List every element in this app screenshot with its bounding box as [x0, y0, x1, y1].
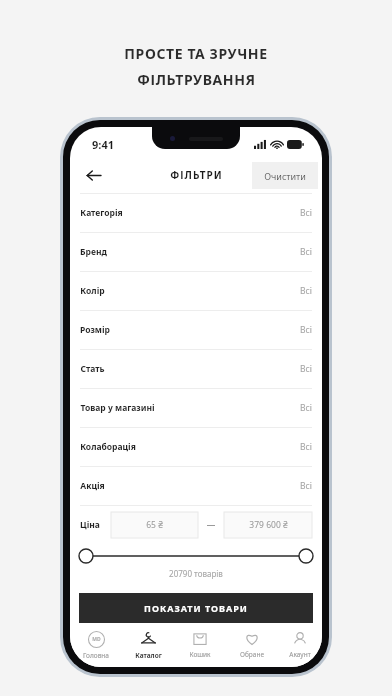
staticText: Товар у магазині [80, 402, 155, 414]
staticText: Колаборація [80, 441, 136, 453]
staticText: Ціна [80, 519, 100, 531]
staticText: Всі [300, 207, 312, 219]
staticText: 379 600 ₴ [249, 519, 288, 531]
button[interactable]: Стать [70, 350, 322, 388]
button[interactable]: 65 ₴ [111, 512, 198, 538]
staticText: Очистити [264, 170, 306, 182]
staticText: Головна [83, 651, 109, 660]
button[interactable]: ПОКАЗАТИ ТОВАРИ [79, 593, 313, 623]
button[interactable]: Розмір [70, 311, 322, 349]
staticText: Всі [300, 246, 312, 258]
staticText: Каталог [135, 651, 162, 660]
staticText: MD [92, 636, 101, 643]
button[interactable]: Обране [226, 628, 278, 662]
staticText: ПРОСТЕ ТА ЗРУЧНЕ [124, 44, 268, 63]
button[interactable]: Категорія [70, 194, 322, 232]
staticText: Всі [300, 324, 312, 336]
button[interactable]: Колір [70, 272, 322, 310]
staticText: Бренд [80, 246, 107, 258]
button[interactable]: 379 600 ₴ [224, 512, 312, 538]
staticText: Акція [80, 480, 105, 492]
staticText: Всі [300, 480, 312, 492]
staticText: ПОКАЗАТИ ТОВАРИ [144, 602, 248, 614]
button[interactable]: Каталог [122, 628, 174, 663]
button[interactable]: Колаборація [70, 428, 322, 466]
staticText: Стать [80, 363, 105, 375]
staticText: Акаунт [289, 650, 311, 659]
button[interactable]: Акаунт [278, 628, 322, 662]
staticText: Всі [300, 441, 312, 453]
button[interactable]: Кошик [174, 628, 226, 662]
button[interactable]: MD [70, 628, 122, 663]
button[interactable]: Товар у магазині [70, 389, 322, 427]
staticText: Кошик [189, 650, 211, 659]
button[interactable]: Бренд [70, 233, 322, 271]
staticText: ФІЛЬТРИ [170, 168, 223, 182]
staticText: Колір [80, 285, 105, 297]
staticText: Всі [300, 402, 312, 414]
staticText: Категорія [80, 207, 123, 219]
staticText: Всі [300, 285, 312, 297]
staticText: 65 ₴ [146, 519, 163, 531]
button[interactable]: Back [76, 158, 110, 192]
staticText: 20790 товарів [169, 568, 223, 579]
staticText: Розмір [80, 324, 110, 336]
button[interactable]: Акція [70, 467, 322, 505]
button[interactable]: Очистити [252, 162, 318, 189]
staticText: Обране [240, 650, 264, 659]
staticText: Всі [300, 363, 312, 375]
staticText: 9:41 [92, 137, 114, 152]
staticText: ФІЛЬТРУВАННЯ [137, 70, 256, 89]
